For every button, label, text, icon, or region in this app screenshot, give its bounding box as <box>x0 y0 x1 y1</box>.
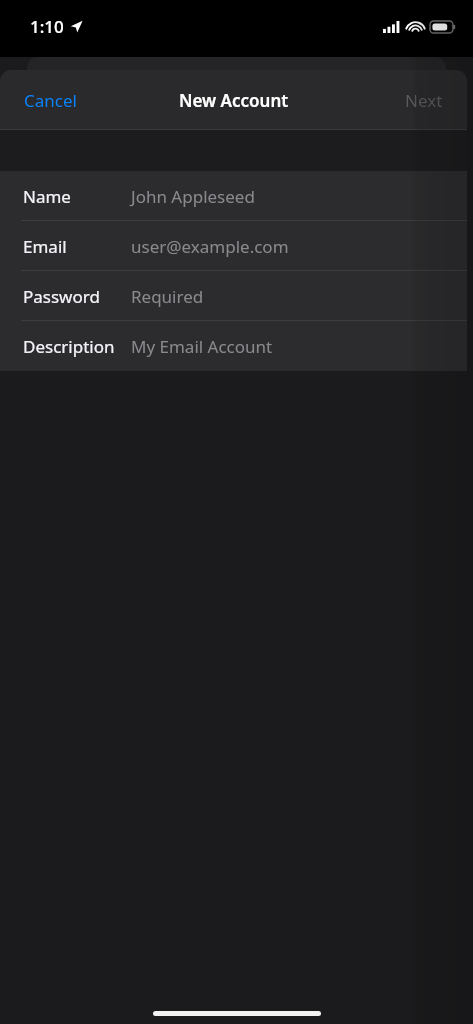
staticText: Name <box>23 185 71 208</box>
staticText: Cancel <box>24 89 77 112</box>
staticText: 1:10 <box>30 15 64 38</box>
button[interactable]: Cancel <box>0 79 101 122</box>
button[interactable]: Name <box>0 171 467 221</box>
button[interactable]: Next <box>381 79 467 122</box>
button[interactable]: Password <box>0 271 467 321</box>
staticText: Email <box>23 235 67 258</box>
staticText: My Email Account <box>131 335 273 358</box>
button[interactable]: Email <box>0 221 467 271</box>
staticText: Next <box>405 89 443 112</box>
staticText: Password <box>23 285 100 308</box>
staticText: Required <box>131 285 204 308</box>
staticText: Description <box>23 335 115 358</box>
staticText: John Appleseed <box>131 185 255 208</box>
staticText: New Account <box>179 89 289 112</box>
staticText: user@example.com <box>131 235 289 258</box>
button[interactable]: Description <box>0 321 467 371</box>
